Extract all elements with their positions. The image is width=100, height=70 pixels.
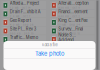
staticText: Geo Report — [10, 18, 31, 23]
button[interactable]: King C…ent Fee — [50, 18, 94, 26]
staticText: Survey…Final — [58, 26, 83, 31]
staticText: Site Pl…Rev 3 — [10, 26, 37, 31]
staticText: Alterati…ception — [58, 1, 88, 6]
staticText: King C…ent Fee — [58, 18, 87, 23]
button[interactable]: Alterati…ception — [50, 1, 94, 9]
staticText: 1.2 MB · Oct 14 — [10, 6, 31, 9]
staticText: 1.4 MB · Sep 11 — [10, 40, 31, 44]
button[interactable]: Afforda…Project — [1, 1, 46, 9]
staticText: 640 KB · Oct 2 — [58, 15, 80, 18]
button[interactable]: Financi…eement — [50, 9, 94, 18]
staticText: Drain F…xhibit A — [10, 9, 41, 14]
staticText: 830 KB · Oct 9 — [58, 6, 80, 9]
staticText: 1.7 MB · Sep 15 — [58, 32, 80, 35]
button[interactable]: Take photo — [3, 49, 95, 58]
staticText: Noise S…Addend — [58, 32, 76, 42]
button[interactable]: Site Pl…Rev 3 — [1, 27, 46, 35]
staticText: 2.4 MB · Oct 7 — [10, 15, 31, 18]
button[interactable]: Drain F…xhibit A — [1, 9, 46, 18]
button[interactable]: Noise S…Addend — [50, 35, 94, 43]
button[interactable]: Survey…Final — [50, 27, 94, 35]
button[interactable]: Traffic…Memo — [1, 35, 46, 43]
staticText: 980 KB · Sep 19 — [10, 32, 34, 35]
staticText: Afforda…Project — [10, 1, 39, 6]
staticText: 1.1 MB · Sep 24 — [58, 23, 80, 26]
staticText: 4.0 MB · Sep 28 — [10, 23, 34, 26]
staticText: Take photo — [35, 50, 64, 57]
staticText: Add a file — [41, 42, 57, 47]
staticText: Traffic…Memo — [10, 35, 38, 40]
button[interactable]: Geo Report — [1, 18, 46, 26]
staticText: Financi…eement — [58, 9, 87, 14]
